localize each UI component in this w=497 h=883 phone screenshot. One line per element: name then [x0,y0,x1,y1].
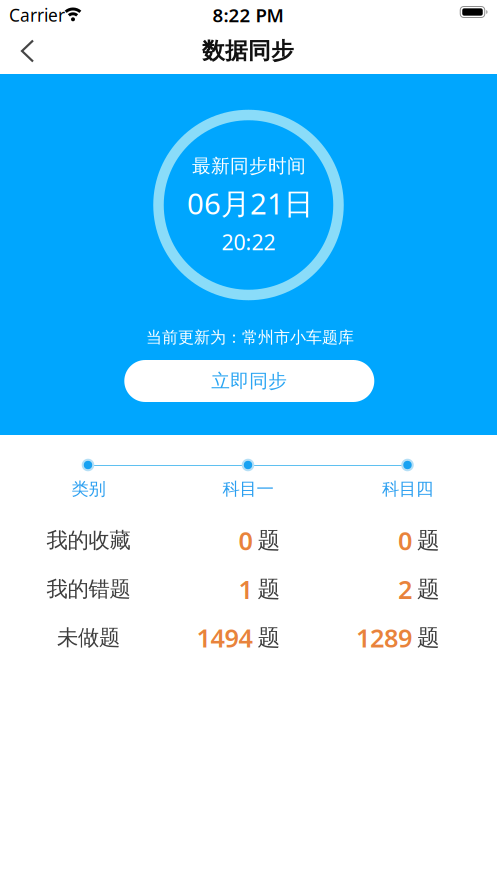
staticText: 未做题 [57,625,120,651]
staticText: 类别 [71,478,105,500]
staticText: 20:22 [221,228,275,256]
staticText: 当前更新为：常州市小车题库 [146,328,354,347]
staticText: 科目一 [222,478,273,500]
staticText: 题 [257,526,280,554]
button[interactable]: 立即同步 [124,360,374,402]
button[interactable]: Back [5,38,49,63]
staticText: 1494 [196,621,252,654]
staticText: 2 [398,572,412,606]
staticText: 1 [238,572,252,606]
staticText: 我的收藏 [46,527,130,553]
staticText: 题 [417,624,440,652]
staticText: Carrier [9,3,65,26]
staticText: 科目四 [382,478,433,500]
staticText: 06月21日 [187,183,313,222]
staticText: 题 [417,526,440,554]
staticText: 数据同步 [202,37,294,65]
staticText: 题 [417,575,440,603]
staticText: 0 [398,524,412,557]
staticText: 立即同步 [211,369,287,392]
staticText: 0 [238,524,252,557]
staticText: 最新同步时间 [192,154,306,177]
staticText: 8:22 PM [212,3,283,27]
staticText: 我的错题 [46,576,130,602]
staticText: 1289 [356,621,412,654]
staticText: 题 [257,624,280,652]
staticText: 题 [257,575,280,603]
